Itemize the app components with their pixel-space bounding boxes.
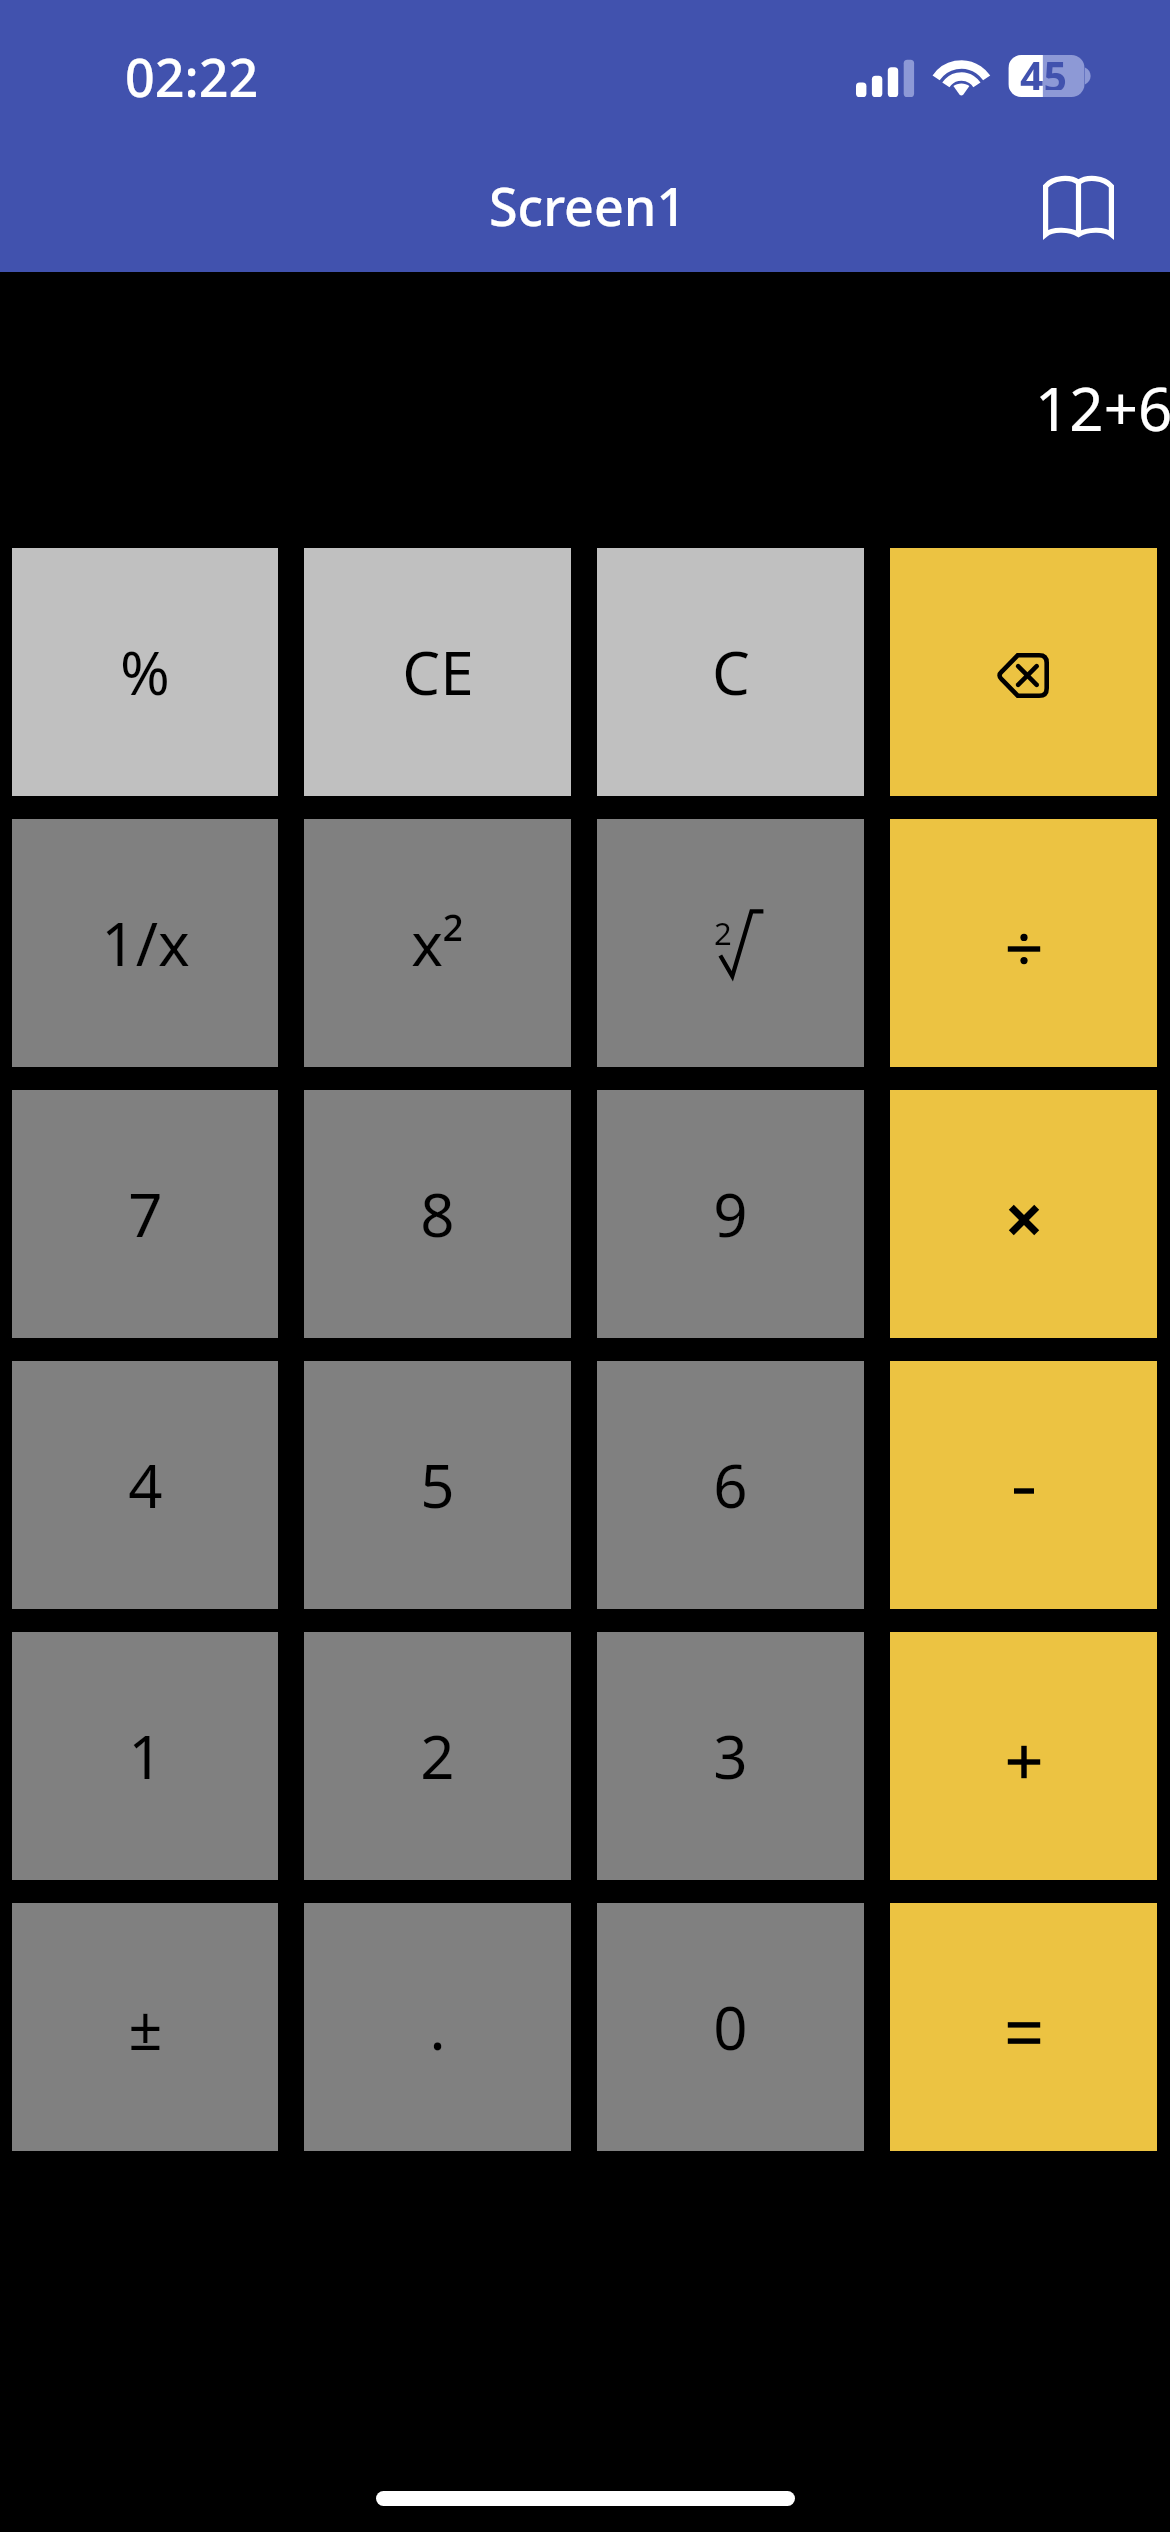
staticText: 2: [420, 1715, 455, 1797]
button[interactable]: Backspace: [890, 548, 1157, 796]
staticText: 1/x: [101, 902, 190, 984]
button[interactable]: ±: [12, 1903, 278, 2151]
button[interactable]: CE: [304, 548, 571, 796]
staticText: x²: [411, 902, 464, 984]
staticText: 2: [714, 912, 732, 954]
button[interactable]: 3: [597, 1632, 864, 1880]
staticText: 45: [1020, 48, 1067, 90]
button[interactable]: 2: [304, 1632, 571, 1880]
button[interactable]: Multiply: [890, 1090, 1157, 1338]
button[interactable]: 6: [597, 1361, 864, 1609]
button[interactable]: Square root: [597, 819, 864, 1067]
staticText: C: [712, 631, 750, 713]
staticText: 3: [713, 1715, 748, 1797]
button[interactable]: Equals: [890, 1903, 1157, 2151]
button[interactable]: C: [597, 548, 864, 796]
button[interactable]: 1/x: [12, 819, 278, 1067]
button[interactable]: 1: [12, 1632, 278, 1880]
staticText: 02:22: [125, 41, 259, 112]
button[interactable]: 5: [304, 1361, 571, 1609]
button[interactable]: 9: [597, 1090, 864, 1338]
button[interactable]: Plus: [890, 1632, 1157, 1880]
button[interactable]: Divide: [890, 819, 1157, 1067]
staticText: 5: [420, 1444, 455, 1526]
staticText: 8: [420, 1173, 455, 1255]
button[interactable]: 0: [597, 1903, 864, 2151]
staticText: 0: [713, 1986, 748, 2068]
staticText: 6: [713, 1444, 748, 1526]
button[interactable]: 7: [12, 1090, 278, 1338]
staticText: 4: [128, 1444, 163, 1526]
button[interactable]: Open book: [1043, 177, 1114, 237]
button[interactable]: %: [12, 548, 278, 796]
button[interactable]: 8: [304, 1090, 571, 1338]
staticText: ±: [128, 1986, 163, 2068]
staticText: 12+6: [1035, 367, 1170, 449]
staticText: Screen1: [489, 170, 687, 241]
staticText: %: [120, 631, 170, 713]
staticText: 9: [713, 1173, 748, 1255]
button[interactable]: .: [304, 1903, 571, 2151]
staticText: 7: [128, 1173, 163, 1255]
staticText: CE: [402, 631, 474, 713]
button[interactable]: 4: [12, 1361, 278, 1609]
button[interactable]: x²: [304, 819, 571, 1067]
staticText: .: [429, 1986, 446, 2068]
staticText: 1: [128, 1715, 163, 1797]
button[interactable]: Minus: [890, 1361, 1157, 1609]
